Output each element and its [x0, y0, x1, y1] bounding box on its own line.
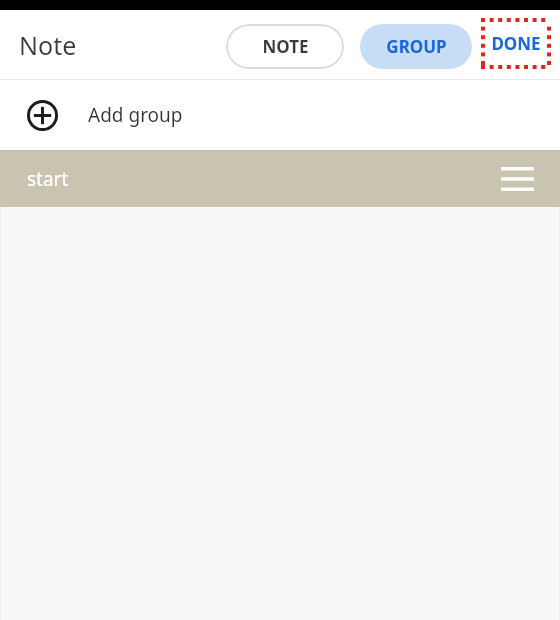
button[interactable]: start — [0, 150, 560, 207]
staticText: Add group — [88, 102, 183, 128]
other: Reorder group — [501, 167, 534, 191]
staticText: DONE — [491, 32, 541, 55]
staticText: start — [27, 166, 69, 192]
button[interactable]: GROUP — [360, 24, 472, 69]
button[interactable]: NOTE — [226, 24, 344, 69]
staticText: NOTE — [262, 35, 309, 58]
staticText: Note — [19, 28, 77, 62]
button[interactable]: Add group — [0, 80, 560, 150]
other: Add group — [27, 100, 58, 131]
staticText: GROUP — [386, 35, 447, 58]
button[interactable]: DONE — [481, 18, 551, 69]
